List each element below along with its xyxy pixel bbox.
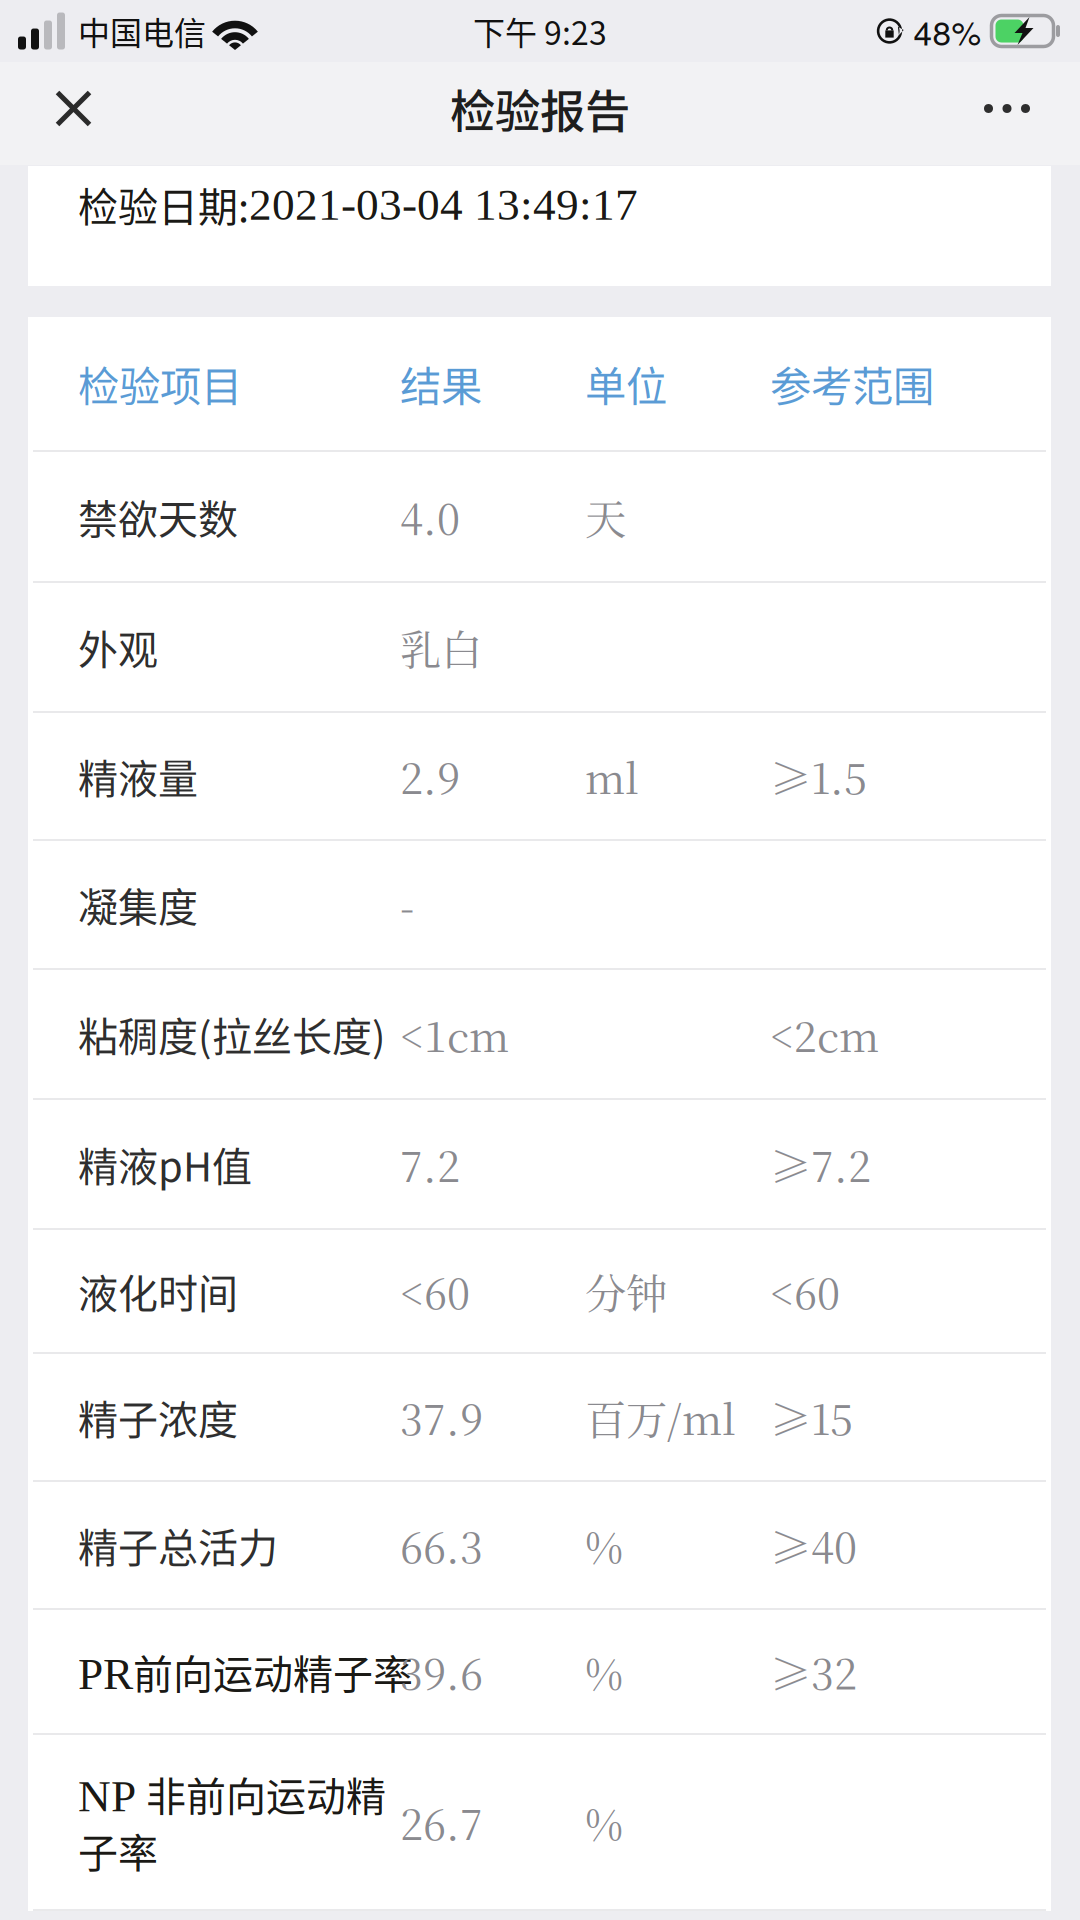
staticText: % <box>585 1515 623 1575</box>
button[interactable]: 更多 <box>940 57 1030 160</box>
staticText: 结果 <box>400 354 482 413</box>
staticText: 7.2 <box>400 1134 460 1194</box>
staticText: PR前向运动精子率 <box>78 1643 413 1700</box>
staticText: 精液量 <box>78 747 198 805</box>
staticText: 66.3 <box>400 1515 483 1575</box>
staticText: ≥32 <box>770 1642 857 1701</box>
staticText: 凝集度 <box>78 875 198 933</box>
staticText: 百万/ml <box>585 1387 736 1447</box>
staticText: 精子浓度 <box>78 1388 238 1446</box>
staticText: 液化时间 <box>78 1262 238 1320</box>
staticText: 外观 <box>78 618 158 676</box>
staticText: 检验日期:2021-03-04 13:49:17 <box>78 176 638 232</box>
staticText: ≥1.5 <box>770 746 867 806</box>
staticText: <60 <box>400 1261 470 1321</box>
staticText: <2cm <box>770 1004 879 1064</box>
staticText: 精液pH值 <box>78 1135 252 1193</box>
staticText: 参考范围 <box>770 354 934 413</box>
staticText: 天 <box>585 487 626 546</box>
staticText: % <box>585 1642 623 1701</box>
staticText: % <box>585 1792 623 1852</box>
staticText: <60 <box>770 1261 840 1321</box>
button[interactable]: 关闭 <box>55 57 145 160</box>
staticText: ml <box>585 746 639 806</box>
staticText: - <box>400 875 414 934</box>
staticText: 检验报告 <box>450 76 630 141</box>
staticText: 4.0 <box>400 487 460 546</box>
staticText: ≥15 <box>770 1387 853 1447</box>
staticText: 乳白 <box>400 617 482 677</box>
staticText: 26.7 <box>400 1792 483 1852</box>
staticText: 中国电信 <box>78 8 206 54</box>
staticText: 检验项目 <box>78 354 242 413</box>
staticText: NP 非前向运动精 子率 <box>78 1765 386 1878</box>
staticText: 精子总活力 <box>78 1516 278 1574</box>
staticText: 48% <box>913 7 981 55</box>
staticText: 分钟 <box>585 1261 667 1321</box>
staticText: <1cm <box>400 1004 509 1064</box>
staticText: 37.9 <box>400 1387 483 1447</box>
staticText: ≥7.2 <box>770 1134 871 1194</box>
staticText: ≥40 <box>770 1515 857 1575</box>
staticText: 单位 <box>585 354 667 413</box>
staticText: 粘稠度(拉丝长度) <box>78 1005 386 1063</box>
staticText: 39.6 <box>400 1642 483 1701</box>
staticText: 禁欲天数 <box>78 487 238 545</box>
staticText: 下午 9:23 <box>473 8 607 54</box>
staticText: 2.9 <box>400 746 460 806</box>
